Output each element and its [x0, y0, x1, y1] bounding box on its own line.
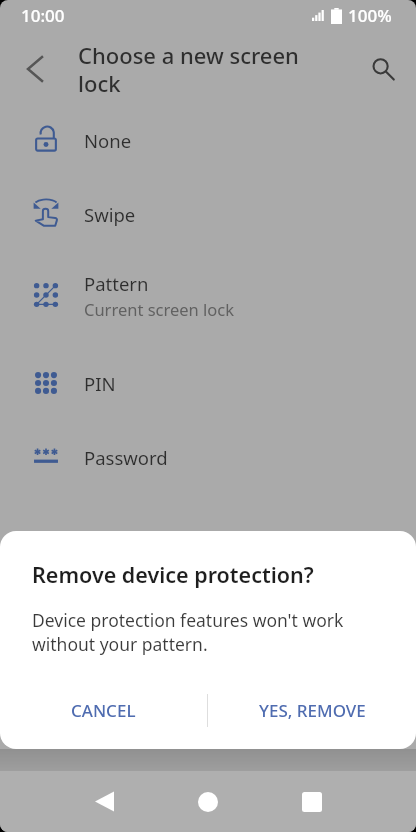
button[interactable]: Password — [0, 423, 416, 491]
staticText: Choose a new screen lock — [78, 40, 323, 98]
button[interactable]: Recents — [260, 771, 364, 832]
button[interactable]: Back — [8, 42, 62, 96]
button[interactable]: PIN — [0, 349, 416, 417]
staticText: CANCEL — [71, 699, 136, 722]
staticText: Remove device protection? — [32, 560, 314, 589]
staticText: Swipe — [84, 202, 136, 227]
button[interactable]: CANCEL — [0, 685, 207, 735]
button[interactable]: Search — [356, 42, 410, 96]
button[interactable]: Swipe — [0, 180, 416, 248]
button[interactable]: YES, REMOVE — [208, 685, 416, 735]
button[interactable]: Home — [156, 771, 260, 832]
staticText: YES, REMOVE — [259, 699, 366, 722]
staticText: Pattern — [84, 271, 149, 296]
staticText: PIN — [84, 371, 116, 396]
staticText: Password — [84, 445, 168, 470]
staticText: Current screen lock — [84, 298, 235, 320]
staticText: None — [84, 128, 132, 153]
staticText: 10:00 — [21, 4, 65, 27]
button[interactable]: Pattern — [0, 254, 416, 336]
button[interactable]: Back — [52, 771, 156, 832]
staticText: Device protection features won't work wi… — [32, 608, 360, 656]
button[interactable]: None — [0, 106, 416, 174]
staticText: 100% — [348, 4, 392, 27]
